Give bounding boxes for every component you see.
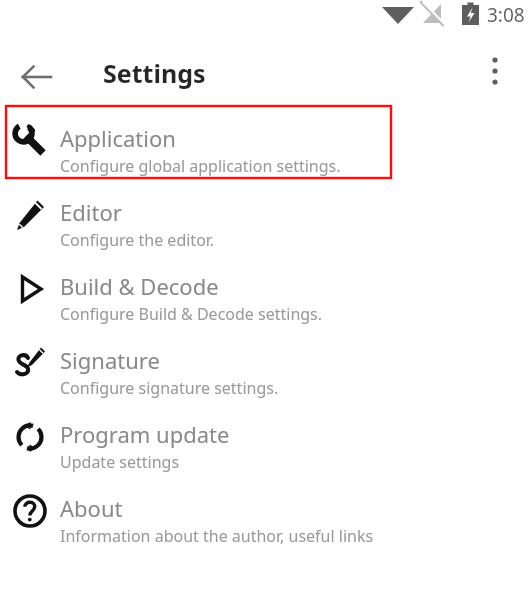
staticText: Configure global application settings. — [60, 155, 341, 177]
staticText: Configure Build & Decode settings. — [60, 303, 323, 325]
staticText: Program update — [60, 419, 230, 449]
button[interactable]: Back — [14, 54, 60, 100]
button[interactable]: Program update — [0, 400, 530, 474]
button[interactable]: More options — [472, 48, 518, 94]
staticText: Application — [60, 123, 176, 153]
staticText: Configure the editor. — [60, 229, 215, 251]
button[interactable]: Signature — [0, 326, 530, 400]
staticText: 3:08 — [487, 2, 525, 28]
button[interactable]: Build & Decode — [0, 252, 530, 326]
staticText: Signature — [60, 345, 160, 375]
button[interactable]: Editor — [0, 178, 530, 252]
staticText: Editor — [60, 197, 122, 227]
button[interactable]: Application — [0, 104, 530, 178]
staticText: Update settings — [60, 451, 180, 473]
staticText: Information about the author, useful lin… — [60, 525, 374, 547]
staticText: About — [60, 493, 123, 523]
button[interactable]: About — [0, 474, 530, 548]
staticText: Configure signature settings. — [60, 377, 279, 399]
staticText: Build & Decode — [60, 271, 219, 301]
staticText: Settings — [103, 56, 206, 90]
